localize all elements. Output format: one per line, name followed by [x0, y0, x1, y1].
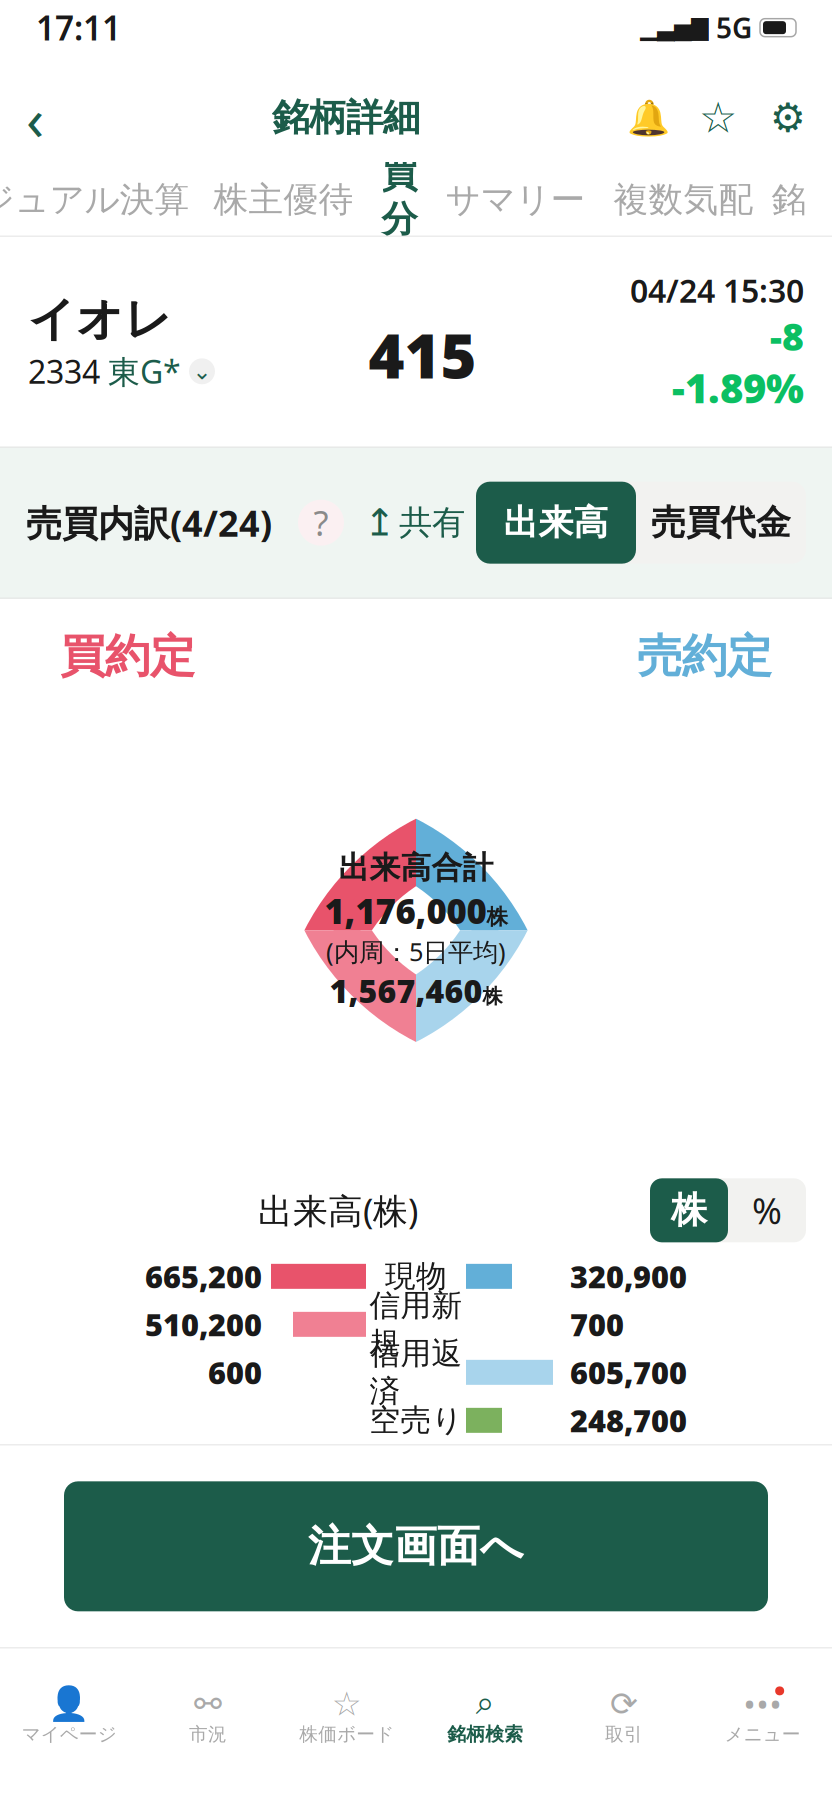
staticText: 売約定 — [637, 629, 772, 684]
staticText: 東G* — [108, 350, 181, 393]
button[interactable]: アラート追加 — [622, 90, 674, 146]
staticText: 出来高合計 — [338, 849, 493, 887]
staticText: 株 — [671, 1188, 707, 1232]
button[interactable]: 出来高 — [476, 482, 636, 564]
button[interactable]: 戻る — [0, 86, 70, 150]
staticText: 株価ボード — [299, 1723, 394, 1746]
staticText: 株 — [486, 904, 507, 930]
staticText: ⌕ — [476, 1688, 495, 1720]
staticText: ジュアル決算 — [0, 178, 189, 221]
button[interactable]: 👤 — [0, 1681, 139, 1746]
staticText: 売買内訳(4/24) — [26, 499, 272, 547]
staticText: メニュー — [725, 1723, 801, 1746]
staticText: 1,567,460 — [329, 969, 482, 1012]
staticText: 🔔 — [626, 98, 669, 137]
staticText: ? — [313, 500, 328, 546]
staticText: 605,700 — [570, 1352, 687, 1393]
button[interactable]: ジュアル決算 — [0, 164, 199, 236]
button[interactable]: ⟳ — [555, 1681, 693, 1746]
staticText: 空売り — [369, 1401, 462, 1439]
staticText: % — [752, 1186, 782, 1234]
button[interactable]: サマリー — [431, 164, 599, 236]
staticText: ☆ — [699, 93, 737, 142]
staticText: -1.89% — [672, 361, 804, 414]
button[interactable]: 銘 — [767, 164, 810, 236]
staticText: 信用返済 — [369, 1335, 462, 1410]
staticText: 取引 — [605, 1723, 643, 1746]
button[interactable]: ↥ — [364, 498, 465, 548]
staticText: 2334 — [28, 350, 100, 393]
staticText: ‹ — [26, 79, 44, 157]
staticText: 5G — [716, 9, 752, 46]
staticText: 17:11 — [36, 5, 121, 50]
staticText: 共有 — [399, 502, 465, 543]
staticText: 👤 — [48, 1685, 90, 1723]
staticText: ☆ — [332, 1685, 362, 1723]
button[interactable]: 株主優待 — [199, 164, 367, 236]
staticText: 現物 — [385, 1257, 447, 1295]
staticText: 買約定 — [60, 629, 195, 684]
staticText: ⌄ — [192, 358, 211, 384]
button[interactable]: 売買代金 — [636, 482, 806, 564]
button[interactable]: ••• — [693, 1681, 832, 1746]
staticText: 注文画面へ — [308, 1520, 524, 1572]
staticText: ↥ — [364, 501, 395, 544]
button[interactable]: 株 — [650, 1178, 728, 1242]
staticText: 売買分析 — [381, 109, 417, 286]
staticText: (内周：5日平均) — [326, 935, 506, 968]
staticText: 04/24 15:30 — [630, 269, 804, 312]
staticText: 信用新規 — [369, 1287, 462, 1362]
staticText: 510,200 — [145, 1304, 262, 1345]
staticText: ⚙ — [770, 95, 806, 140]
staticText: 700 — [570, 1304, 624, 1345]
staticText: 売買代金 — [651, 501, 791, 544]
staticText: 600 — [208, 1352, 262, 1393]
button[interactable]: % — [728, 1178, 806, 1242]
button[interactable]: 複数気配 — [599, 164, 767, 236]
staticText: ▁▃▅▇ — [640, 15, 708, 40]
button[interactable]: 売買分析 — [367, 164, 431, 236]
button[interactable]: 2334 — [28, 350, 215, 393]
staticText: 市況 — [189, 1723, 227, 1746]
staticText: 株 — [482, 984, 502, 1009]
staticText: イオレ — [28, 291, 172, 348]
staticText: ⟳ — [610, 1685, 638, 1723]
button[interactable]: お気に入り追加 — [692, 90, 744, 146]
button[interactable]: ヘルプ — [298, 500, 344, 546]
staticText: 銘柄詳細 — [272, 95, 420, 141]
button[interactable]: 注文画面へ — [64, 1481, 768, 1611]
staticText: ⚯ — [194, 1685, 222, 1723]
staticText: マイページ — [22, 1723, 117, 1746]
staticText: 248,700 — [570, 1400, 687, 1441]
button[interactable]: ⌕ — [416, 1681, 555, 1746]
staticText: 1,176,000 — [324, 888, 486, 934]
staticText: ••• — [743, 1682, 782, 1726]
staticText: 出来高 — [503, 501, 608, 544]
staticText: 複数気配 — [613, 178, 753, 221]
staticText: 銘 — [771, 178, 806, 221]
staticText: 320,900 — [570, 1256, 687, 1297]
staticText: 株主優待 — [213, 178, 353, 221]
staticText: -8 — [770, 312, 804, 361]
button[interactable]: 設定 — [762, 90, 814, 146]
staticText: 415 — [368, 314, 476, 395]
staticText: 出来高(株) — [258, 1187, 418, 1233]
staticText: 銘柄検索 — [447, 1723, 523, 1746]
staticText: サマリー — [445, 178, 585, 221]
staticText: 665,200 — [145, 1256, 262, 1297]
button[interactable]: ⚯ — [139, 1681, 277, 1746]
button[interactable]: ☆ — [277, 1681, 416, 1746]
